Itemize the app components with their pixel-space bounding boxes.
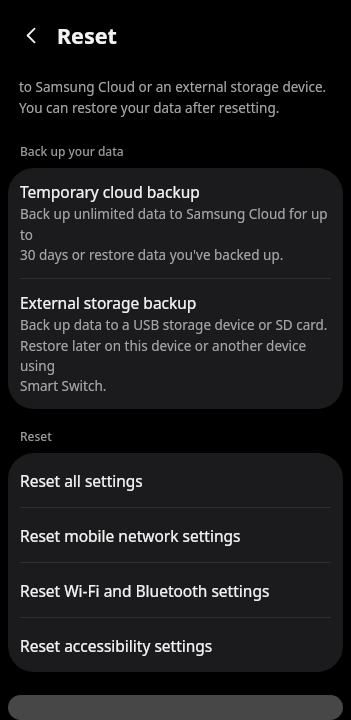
button[interactable]: Factory data reset xyxy=(8,695,343,720)
button[interactable]: External storage backup xyxy=(8,279,343,409)
staticText: to Samsung Cloud or an external storage … xyxy=(19,78,327,117)
staticText: Reset xyxy=(57,21,117,50)
staticText: Back up data to a USB storage device or … xyxy=(20,316,329,395)
staticText: Reset all settings xyxy=(20,470,143,491)
staticText: Temporary cloud backup xyxy=(20,181,200,202)
staticText: Reset xyxy=(20,428,52,444)
staticText: Back up unlimited data to Samsung Cloud … xyxy=(20,205,329,264)
button[interactable]: Reset all settings xyxy=(8,453,343,507)
staticText: Reset accessibility settings xyxy=(20,635,213,656)
button[interactable]: Reset mobile network settings xyxy=(8,508,343,562)
staticText: Reset Wi-Fi and Bluetooth settings xyxy=(20,580,270,601)
button[interactable]: Reset accessibility settings xyxy=(8,618,343,672)
button[interactable]: Temporary cloud backup xyxy=(8,168,343,278)
button[interactable]: Back xyxy=(12,16,50,54)
staticText: Back up your data xyxy=(20,143,124,159)
staticText: Reset mobile network settings xyxy=(20,525,241,546)
staticText: External storage backup xyxy=(20,292,197,313)
button[interactable]: Reset Wi-Fi and Bluetooth settings xyxy=(8,563,343,617)
